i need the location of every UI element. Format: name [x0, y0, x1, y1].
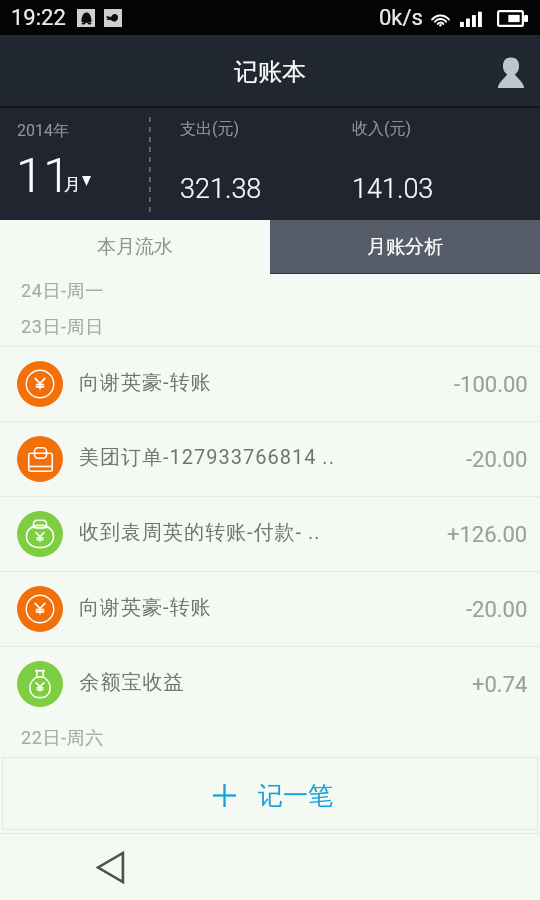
staticText: 23日-周日 — [21, 316, 104, 339]
staticText: 2014年 — [17, 121, 69, 141]
button[interactable]: Back — [86, 843, 134, 891]
staticText: 记账本 — [234, 57, 306, 87]
staticText: 22日-周六 — [21, 727, 104, 750]
button[interactable]: 向谢英豪-转账 — [0, 572, 540, 646]
staticText: 19:22 — [11, 5, 66, 31]
staticText: -100.00 — [454, 372, 528, 398]
staticText: 向谢英豪-转账 — [79, 595, 212, 620]
button[interactable]: 本月流水 — [0, 220, 270, 274]
button[interactable]: 美团订单-127933766814 .. — [0, 422, 540, 496]
staticText: 月 — [64, 174, 81, 195]
staticText: 0k/s — [379, 5, 423, 31]
staticText: +126.00 — [447, 522, 528, 548]
staticText: -20.00 — [466, 597, 528, 623]
button[interactable]: 余额宝收益 — [0, 647, 540, 721]
staticText: 本月流水 — [97, 235, 173, 259]
button[interactable]: 收到袁周英的转账-付款- .. — [0, 497, 540, 571]
staticText: 收入(元) — [352, 119, 412, 139]
button[interactable]: Profile — [484, 45, 538, 99]
staticText: +0.74 — [472, 672, 528, 698]
staticText: -20.00 — [466, 447, 528, 473]
staticText: 141.03 — [352, 173, 434, 205]
staticText: 11 — [16, 147, 71, 204]
staticText: 收到袁周英的转账-付款- .. — [79, 520, 321, 545]
staticText: 向谢英豪-转账 — [79, 370, 212, 395]
button[interactable]: 月账分析 — [270, 220, 540, 274]
staticText: 月账分析 — [367, 235, 443, 259]
staticText: 余额宝收益 — [79, 670, 184, 695]
staticText: 记一笔 — [258, 780, 333, 811]
staticText: 支出(元) — [180, 119, 240, 139]
staticText: 美团订单-127933766814 .. — [79, 445, 335, 470]
button[interactable]: 记一笔 — [2, 757, 538, 830]
button[interactable]: 向谢英豪-转账 — [0, 347, 540, 421]
staticText: 24日-周一 — [21, 280, 104, 303]
staticText: 321.38 — [180, 173, 262, 205]
